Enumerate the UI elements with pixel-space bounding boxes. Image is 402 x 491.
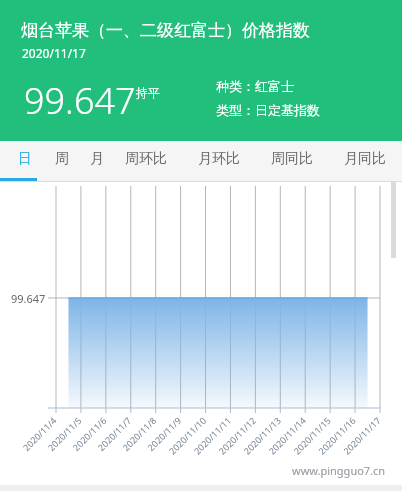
staticText: 月同比: [344, 150, 386, 168]
staticText: 周环比: [125, 150, 167, 168]
staticText: 日: [18, 150, 32, 168]
staticText: 月环比: [198, 150, 240, 168]
staticText: 类型：日定基指数: [216, 102, 320, 118]
button[interactable]: 月环比: [194, 141, 244, 182]
staticText: 周: [55, 150, 69, 168]
staticText: 99.647: [24, 76, 136, 125]
button[interactable]: 月: [85, 141, 108, 182]
button[interactable]: 周: [50, 141, 73, 182]
button[interactable]: 月同比: [340, 141, 390, 182]
staticText: 持平: [136, 85, 160, 100]
staticText: 种类：红富士: [216, 78, 294, 94]
staticText: 2020/11/17: [22, 45, 86, 61]
button[interactable]: 周同比: [267, 141, 317, 182]
staticText: 周同比: [271, 150, 313, 168]
staticText: 烟台苹果（一、二级红富士）价格指数: [21, 20, 310, 41]
staticText: 月: [90, 150, 104, 168]
button[interactable]: 周环比: [121, 141, 171, 182]
button[interactable]: 日: [13, 141, 36, 182]
